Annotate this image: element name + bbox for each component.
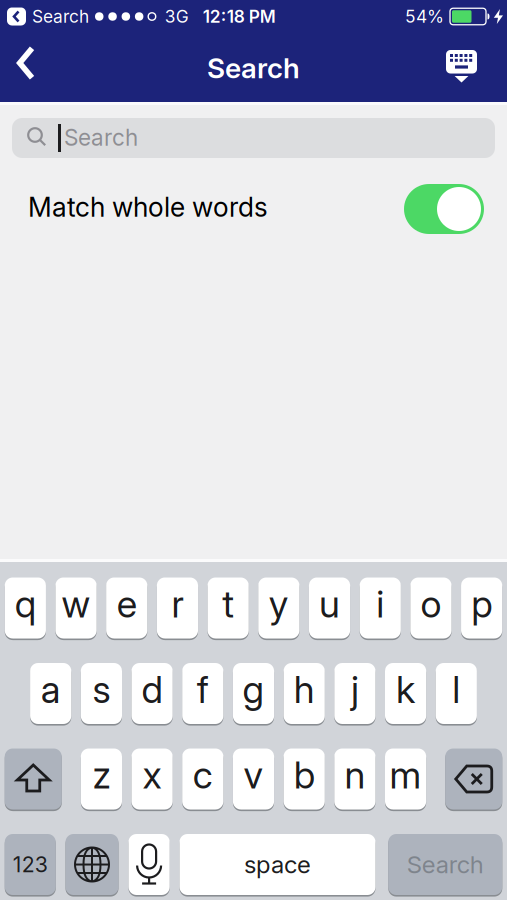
- staticText: o: [420, 582, 441, 626]
- button[interactable]: h: [284, 663, 325, 724]
- button[interactable]: g: [233, 663, 274, 724]
- staticText: m: [390, 753, 422, 797]
- button[interactable]: x: [131, 748, 173, 809]
- staticText: a: [41, 667, 61, 711]
- button[interactable]: Delete: [445, 748, 502, 809]
- staticText: f: [197, 667, 209, 711]
- staticText: d: [142, 667, 163, 711]
- staticText: r: [171, 582, 183, 626]
- button[interactable]: l: [436, 663, 477, 724]
- button[interactable]: y: [258, 577, 299, 638]
- button[interactable]: q: [5, 577, 46, 638]
- button[interactable]: w: [55, 577, 97, 638]
- button[interactable]: a: [30, 663, 71, 724]
- staticText: Search: [32, 6, 89, 27]
- staticText: k: [396, 667, 415, 711]
- staticText: 3G: [165, 6, 189, 27]
- button[interactable]: Search: [388, 834, 502, 895]
- button[interactable]: Back: [16, 45, 35, 80]
- button[interactable]: Next keyboard: [65, 834, 118, 895]
- button[interactable]: Dictate: [128, 834, 170, 895]
- staticText: Search: [407, 850, 484, 879]
- button[interactable]: v: [233, 748, 274, 809]
- button[interactable]: d: [131, 663, 173, 724]
- button[interactable]: m: [385, 748, 426, 809]
- button[interactable]: o: [410, 577, 451, 638]
- staticText: e: [117, 582, 137, 626]
- staticText: j: [351, 667, 359, 711]
- staticText: c: [193, 753, 213, 797]
- button[interactable]: Match whole words: [404, 184, 484, 234]
- button[interactable]: Shift: [5, 748, 62, 809]
- staticText: y: [269, 582, 289, 626]
- staticText: t: [222, 582, 234, 626]
- button[interactable]: s: [81, 663, 122, 724]
- staticText: Search: [207, 51, 300, 84]
- button[interactable]: space: [179, 834, 375, 895]
- staticText: p: [471, 582, 492, 626]
- staticText: 12:18 PM: [203, 6, 276, 27]
- button[interactable]: u: [309, 577, 350, 638]
- staticText: q: [15, 582, 36, 626]
- staticText: s: [92, 667, 110, 711]
- staticText: v: [243, 753, 263, 797]
- button[interactable]: Dismiss Keyboard: [446, 50, 477, 83]
- staticText: Search: [64, 124, 138, 151]
- staticText: g: [242, 667, 264, 711]
- staticText: 54%: [405, 6, 444, 27]
- button[interactable]: c: [182, 748, 223, 809]
- staticText: u: [319, 582, 340, 626]
- button[interactable]: t: [208, 577, 249, 638]
- button[interactable]: n: [334, 748, 375, 809]
- staticText: n: [344, 753, 365, 797]
- staticText: x: [143, 753, 162, 797]
- button[interactable]: b: [284, 748, 325, 809]
- staticText: z: [92, 753, 110, 797]
- button[interactable]: j: [334, 663, 375, 724]
- button[interactable]: i: [360, 577, 401, 638]
- button[interactable]: f: [182, 663, 223, 724]
- button[interactable]: e: [106, 577, 147, 638]
- staticText: i: [376, 582, 384, 626]
- button[interactable]: Return to Search: [7, 6, 89, 27]
- button[interactable]: r: [157, 577, 198, 638]
- staticText: w: [62, 582, 91, 626]
- staticText: b: [294, 753, 315, 797]
- button[interactable]: Search: [12, 118, 495, 158]
- staticText: h: [294, 667, 315, 711]
- staticText: l: [452, 667, 460, 711]
- button[interactable]: p: [461, 577, 502, 638]
- button[interactable]: z: [81, 748, 122, 809]
- button[interactable]: k: [385, 663, 426, 724]
- staticText: Match whole words: [28, 191, 268, 223]
- button[interactable]: Numbers: [5, 834, 56, 895]
- staticText: space: [244, 850, 311, 879]
- staticText: 123: [13, 852, 48, 877]
